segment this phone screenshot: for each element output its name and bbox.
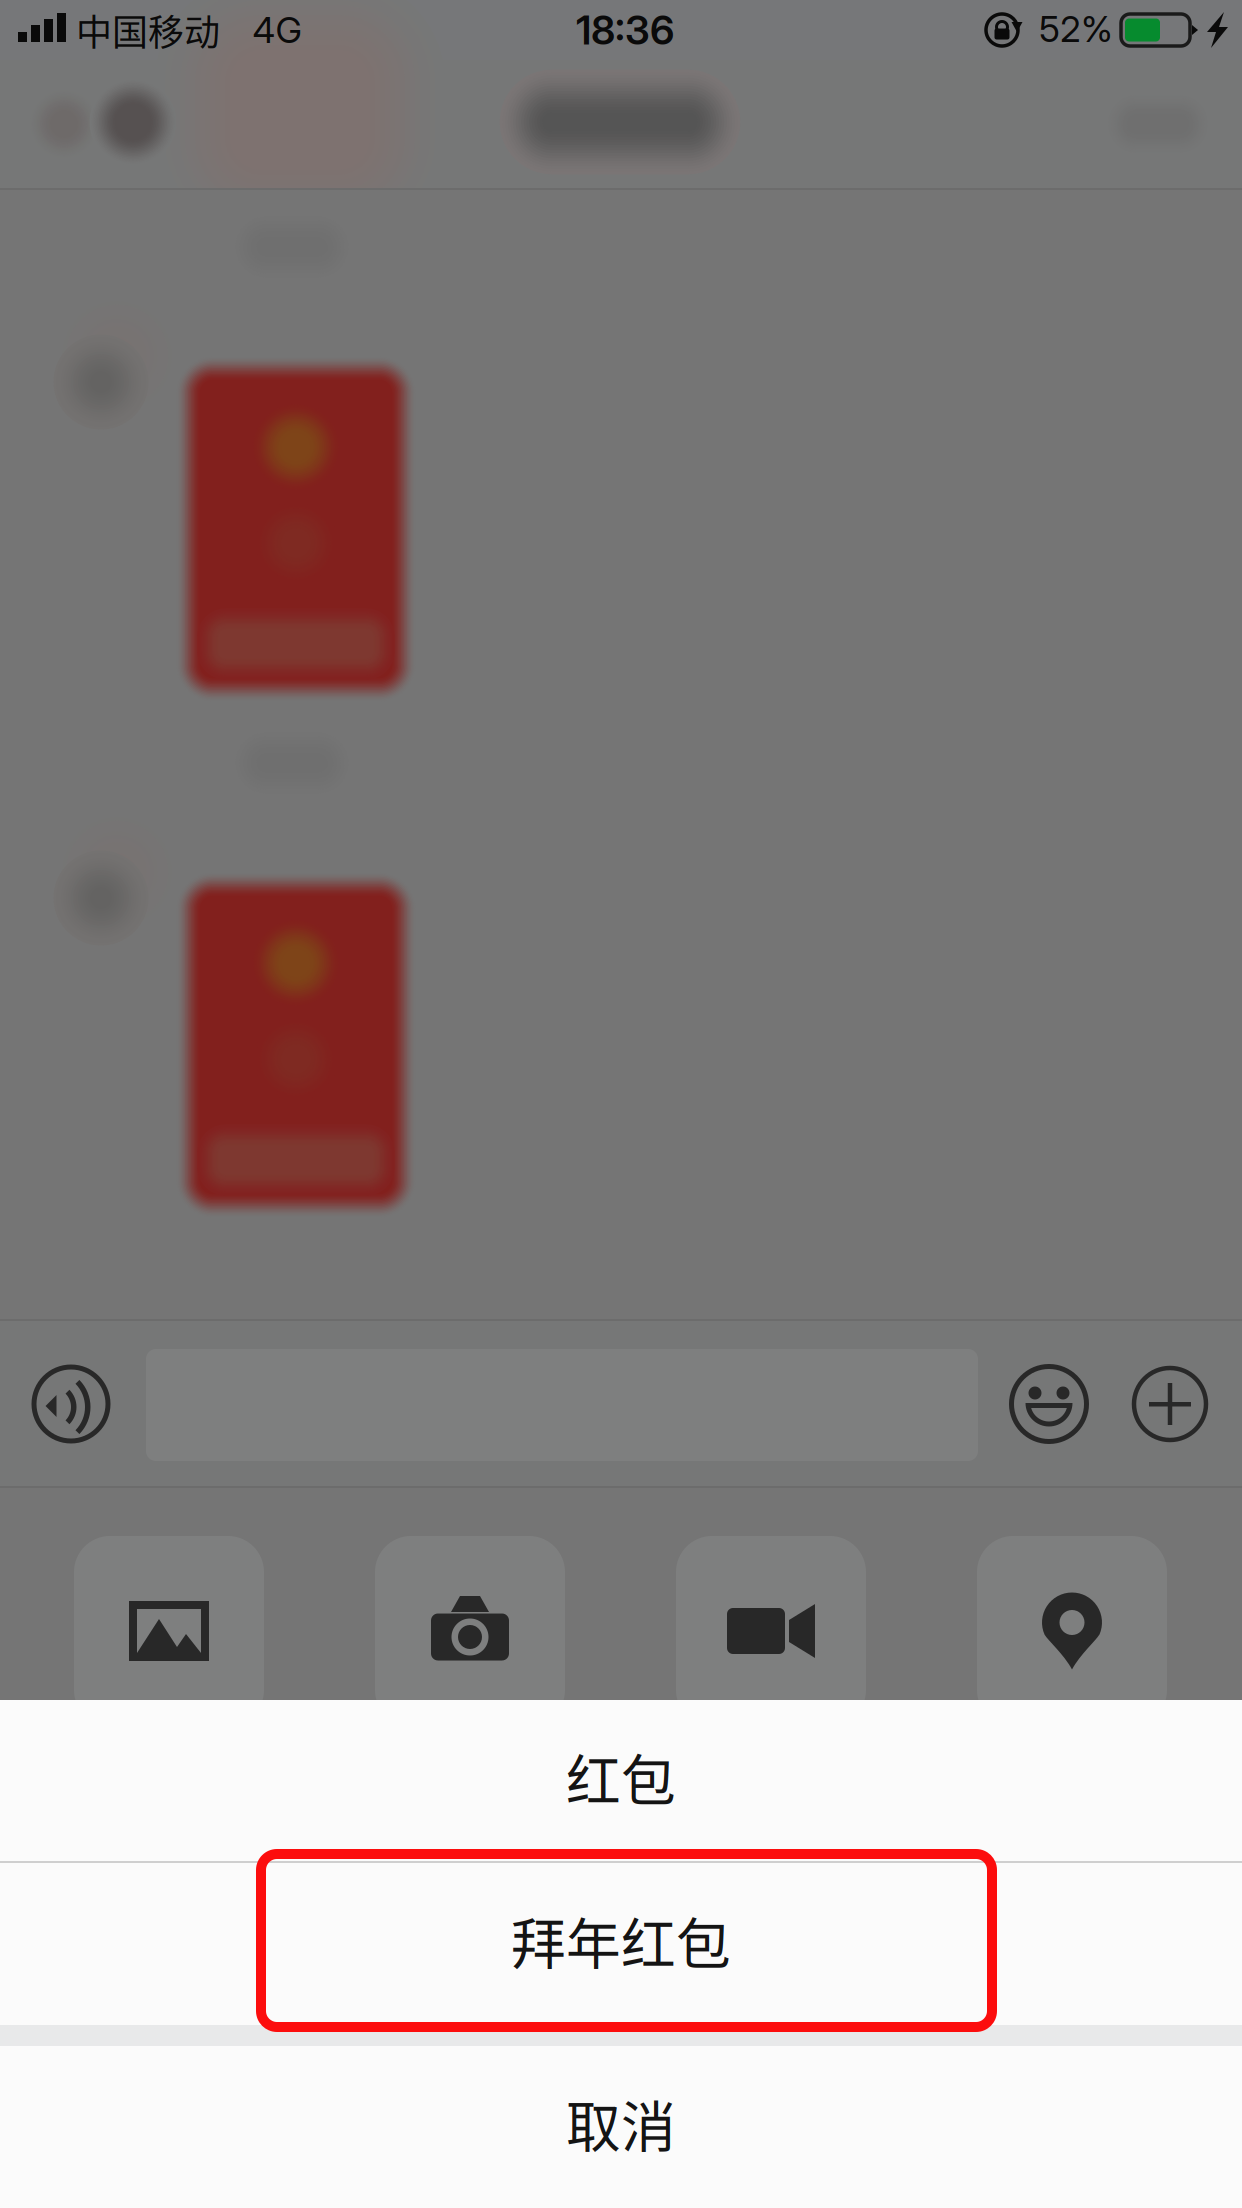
button[interactable]: Camera (375, 1536, 565, 1726)
staticText: 拜年红包 (511, 1900, 731, 1980)
button[interactable]: Emoji (1010, 1365, 1088, 1443)
button[interactable]: Video call (676, 1536, 866, 1726)
staticText: 52% (1039, 7, 1113, 51)
button[interactable]: Voice message (32, 1365, 110, 1443)
staticText: 取消 (566, 2083, 676, 2163)
button[interactable]: More (1132, 1366, 1208, 1442)
staticText: 4G (252, 8, 301, 52)
button[interactable]: Photos (74, 1536, 264, 1726)
staticText: 中国移动 (76, 4, 220, 56)
staticText: 红包 (566, 1737, 676, 1816)
button[interactable]: 拜年红包 (0, 1863, 1242, 2025)
button[interactable]: 取消 (0, 2046, 1242, 2208)
button[interactable]: Location (977, 1536, 1167, 1726)
staticText: 18:36 (576, 6, 674, 54)
button[interactable]: 红包 (0, 1700, 1242, 1861)
